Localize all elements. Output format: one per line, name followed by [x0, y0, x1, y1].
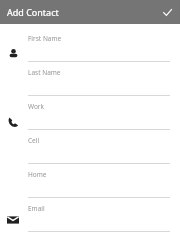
- staticText: First Name: [28, 34, 62, 43]
- button[interactable]: Save contact: [159, 4, 175, 20]
- staticText: Email: [28, 204, 45, 213]
- button[interactable]: Work: [28, 96, 170, 130]
- button[interactable]: Last Name: [28, 62, 170, 96]
- other: Email: [0, 207, 26, 233]
- button[interactable]: First Name: [28, 28, 170, 62]
- button[interactable]: Email: [28, 198, 170, 232]
- staticText: Cell: [28, 136, 40, 145]
- button[interactable]: Cell: [28, 130, 170, 164]
- staticText: Last Name: [28, 68, 61, 77]
- staticText: Home: [28, 170, 47, 179]
- button[interactable]: Home: [28, 164, 170, 198]
- other: Name: [0, 40, 26, 66]
- other: Phone: [0, 109, 26, 135]
- staticText: Work: [28, 102, 45, 111]
- staticText: Add Contact: [7, 6, 59, 18]
